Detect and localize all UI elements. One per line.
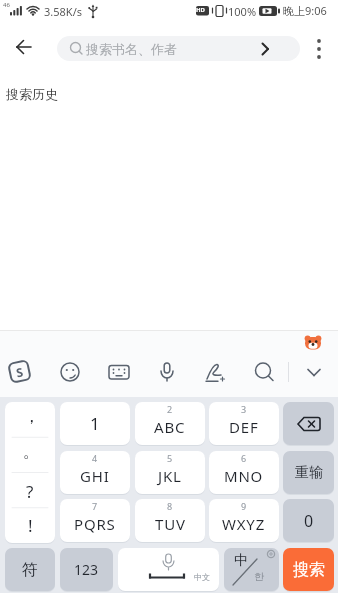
staticText: PQRS [74,514,116,534]
staticText: 123 [74,560,99,579]
button[interactable] [56,358,84,386]
staticText: 2 [167,403,173,415]
button[interactable]: JKL [135,451,205,494]
staticText: HD [196,6,205,14]
button[interactable]: 符 [5,548,55,591]
button[interactable]: MNO [209,451,279,494]
button[interactable]: PQRS [60,499,130,542]
staticText: DEF [229,417,259,437]
button[interactable]: WXYZ [209,499,279,542]
staticText: 3 [241,403,247,415]
button[interactable]: 中文 [118,548,219,591]
button[interactable] [300,358,328,386]
staticText: 搜索书名、作者 [86,41,177,57]
staticText: 晚上9:06 [283,3,327,18]
staticText: WXYZ [222,514,266,534]
staticText: 0 [304,510,314,532]
staticText: TUV [155,514,186,534]
staticText: 5 [167,452,173,464]
staticText: 8 [167,500,173,512]
button[interactable]: 123 [60,548,113,591]
staticText: ， [23,406,40,427]
staticText: 搜索 [293,560,325,580]
button[interactable] [8,31,40,63]
button[interactable]: 搜索书名、作者 [57,36,300,61]
staticText: 7 [92,500,98,512]
staticText: 4 [92,452,98,464]
staticText: 100% [228,4,257,19]
button[interactable]: 重输 [283,451,334,494]
button[interactable] [306,33,334,63]
button[interactable]: ABC [135,402,205,445]
button[interactable]: ， [5,402,55,543]
button[interactable]: 0 [283,499,334,542]
button[interactable] [201,358,229,386]
button[interactable] [250,358,278,386]
button[interactable]: TUV [135,499,205,542]
button[interactable]: DEF [209,402,279,445]
staticText: 重输 [295,464,323,482]
button[interactable]: 中 [224,548,279,591]
staticText: GHI [80,466,110,486]
button[interactable]: S [7,359,32,384]
staticText: 。 [23,442,39,462]
button[interactable]: 搜索 [283,548,334,591]
button[interactable] [105,358,133,386]
staticText: 9 [241,500,247,512]
button[interactable]: 1 [60,402,130,445]
staticText: 한 [254,570,264,583]
staticText: ! [28,514,33,537]
staticText: 6 [241,452,247,464]
button[interactable] [283,402,334,445]
staticText: 3.58K/s [44,4,82,19]
staticText: ? [26,480,34,503]
staticText: 1 [90,412,100,435]
button[interactable]: GHI [60,451,130,494]
staticText: 中 [234,552,248,570]
staticText: ABC [154,417,186,437]
staticText: 符 [22,560,38,580]
staticText: JKL [158,466,182,486]
staticText: MNO [224,466,264,486]
staticText: 搜索历史 [6,86,58,102]
staticText: 中文 [194,572,210,582]
button[interactable] [153,358,181,386]
staticText: 46 [3,1,10,9]
staticText: S [14,363,25,380]
